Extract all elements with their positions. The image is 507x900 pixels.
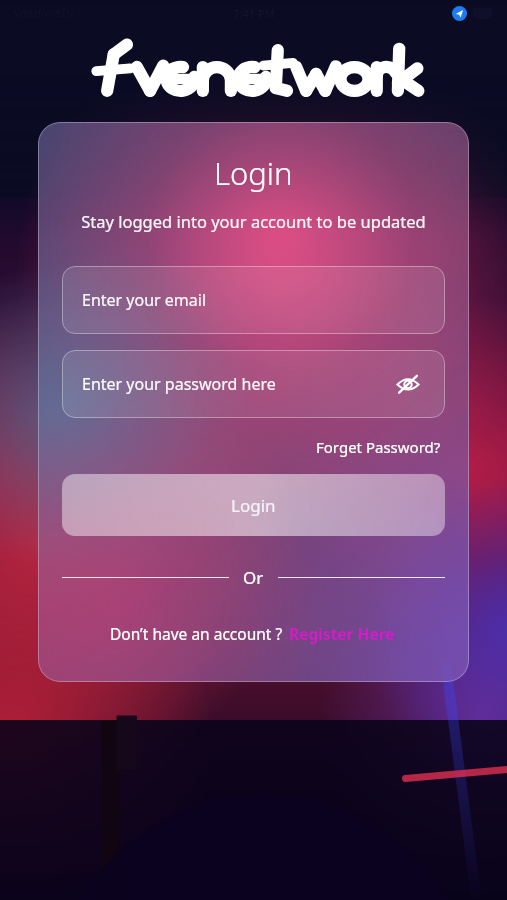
button[interactable]: Register Here [283, 621, 397, 646]
button[interactable]: Enter your email [62, 266, 445, 334]
button[interactable]: Login [62, 474, 445, 536]
staticText: 7:41 PM [233, 6, 275, 21]
staticText: Don’t have an account ? [110, 623, 283, 644]
staticText: Register Here [289, 623, 395, 644]
staticText: Login [231, 494, 276, 517]
button[interactable]: Show password [391, 367, 425, 401]
staticText: Enter your email [82, 289, 207, 311]
staticText: Login [214, 152, 293, 194]
staticText: Or [243, 566, 264, 589]
staticText: Stay logged into your account to be upda… [81, 210, 426, 232]
staticText: Enter your password here [82, 373, 276, 395]
button[interactable]: Forget Password? [312, 434, 445, 460]
button[interactable]: Enter your password here [62, 350, 445, 418]
staticText: Forget Password? [316, 437, 441, 457]
